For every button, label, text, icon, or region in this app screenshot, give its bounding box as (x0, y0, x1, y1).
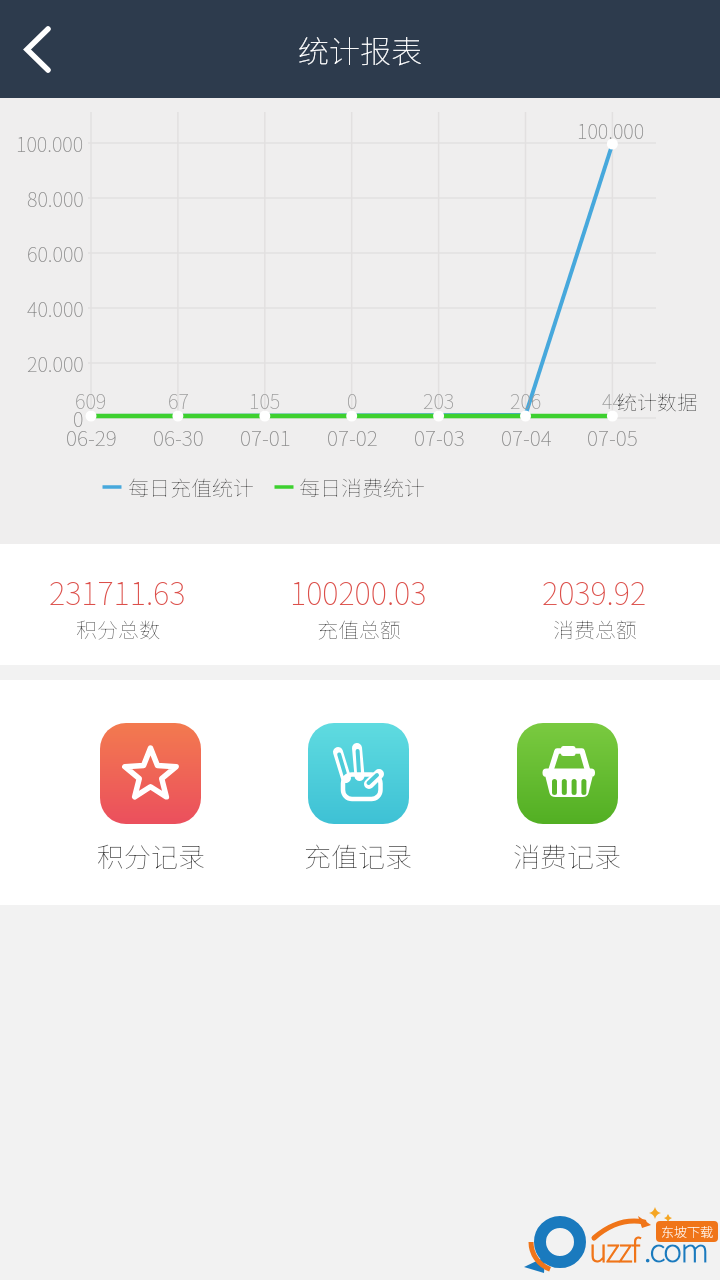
staticText: 充值记录 (304, 836, 412, 875)
staticText: 07-04 (501, 422, 552, 452)
staticText: 105 (249, 386, 281, 415)
staticText: 100.000 (577, 116, 645, 145)
staticText: 07-01 (240, 422, 291, 452)
staticText: 统计数据 (617, 387, 697, 416)
button[interactable] (0, 0, 70, 98)
staticText: 231711.63 (49, 569, 186, 614)
staticText: 统计报表 (298, 27, 422, 72)
button[interactable] (100, 723, 201, 824)
staticText: 06-30 (153, 422, 204, 452)
staticText: 0 (347, 386, 358, 415)
staticText: .com (644, 1225, 708, 1271)
staticText: 07-05 (587, 422, 638, 452)
staticText: 60.000 (27, 239, 84, 268)
staticText: 44 (602, 386, 623, 415)
button[interactable] (517, 723, 618, 824)
staticText: 40.000 (27, 294, 84, 323)
button[interactable]: 2039.92 (464, 564, 720, 649)
staticText: 积分总数 (76, 614, 160, 644)
button[interactable] (308, 723, 409, 824)
staticText: 67 (168, 386, 189, 415)
button[interactable]: 100200.03 (228, 564, 488, 649)
staticText: 每日充值统计 (128, 472, 254, 502)
staticText: 609 (75, 386, 107, 415)
staticText: 东坡下载 (661, 1222, 714, 1241)
staticText: 积分记录 (97, 836, 205, 875)
staticText: 80.000 (27, 184, 84, 213)
staticText: 充值总额 (317, 614, 401, 644)
staticText: 2039.92 (542, 569, 647, 614)
button[interactable]: 231711.63 (0, 564, 247, 649)
staticText: 消费总额 (553, 614, 637, 644)
staticText: uzzf (589, 1225, 639, 1271)
staticText: 06-29 (66, 422, 117, 452)
staticText: 消费记录 (513, 836, 621, 875)
staticText: 20.000 (27, 349, 84, 378)
staticText: 206 (510, 386, 542, 415)
staticText: 100.000 (16, 129, 84, 158)
staticText: 100200.03 (290, 569, 427, 614)
staticText: 07-02 (327, 422, 378, 452)
staticText: 203 (423, 386, 455, 415)
staticText: 07-03 (414, 422, 465, 452)
staticText: 每日消费统计 (299, 472, 425, 502)
staticText: 0 (73, 404, 84, 433)
